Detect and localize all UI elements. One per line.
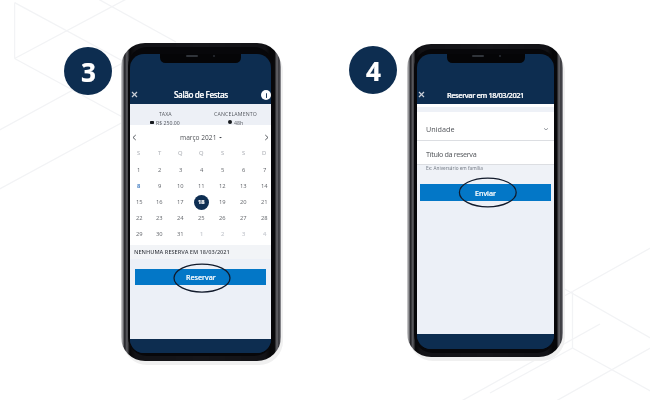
staticText: 16: [156, 198, 163, 206]
button[interactable]: 3: [170, 162, 191, 178]
staticText: D: [262, 149, 267, 157]
staticText: 15: [136, 198, 143, 206]
staticText: 19: [219, 198, 226, 206]
staticText: 9: [158, 182, 162, 190]
staticText: 28: [261, 214, 268, 222]
staticText: R$ 250.00: [156, 119, 180, 125]
button[interactable]: 2: [149, 162, 170, 178]
button[interactable]: Next month: [262, 133, 271, 142]
staticText: Unidade: [426, 124, 455, 134]
staticText: T: [158, 149, 162, 157]
button[interactable]: 14: [254, 178, 271, 194]
staticText: março 2021: [180, 133, 217, 142]
staticText: 25: [198, 214, 205, 222]
button[interactable]: 4: [191, 162, 212, 178]
staticText: 12: [219, 182, 226, 190]
staticText: 13: [240, 182, 247, 190]
button[interactable]: 6: [233, 162, 254, 178]
staticText: 5: [221, 166, 225, 174]
button[interactable]: março 2021: [139, 133, 262, 142]
button[interactable]: 18: [191, 194, 212, 210]
staticText: 21: [261, 198, 268, 206]
staticText: 31: [177, 230, 184, 238]
staticText: 3: [242, 230, 246, 238]
staticText: 3: [179, 166, 183, 174]
staticText: 23: [156, 214, 163, 222]
staticText: S: [221, 149, 225, 157]
button[interactable]: 16: [149, 194, 170, 210]
button[interactable]: Previous month: [130, 133, 139, 142]
button[interactable]: 24: [170, 210, 191, 226]
staticText: 1: [137, 166, 141, 174]
button[interactable]: 29: [130, 226, 149, 242]
button[interactable]: 9: [149, 178, 170, 194]
staticText: 2: [221, 230, 225, 238]
button[interactable]: 25: [191, 210, 212, 226]
button[interactable]: 28: [254, 210, 271, 226]
button[interactable]: 12: [212, 178, 233, 194]
button[interactable]: 8: [130, 178, 149, 194]
staticText: 4: [366, 53, 381, 88]
button[interactable]: Reservar: [135, 269, 266, 285]
button[interactable]: 31: [170, 226, 191, 242]
button[interactable]: 2: [212, 226, 233, 242]
button[interactable]: Close: [417, 85, 431, 104]
button[interactable]: 26: [212, 210, 233, 226]
staticText: Enviar: [475, 188, 496, 198]
button[interactable]: Título da reserva: [426, 143, 554, 164]
staticText: TAXA: [159, 110, 172, 117]
staticText: 22: [136, 214, 143, 222]
staticText: Reservar em 18/03/2021: [447, 90, 524, 100]
staticText: 1: [200, 230, 204, 238]
staticText: 17: [177, 198, 184, 206]
button[interactable]: 10: [170, 178, 191, 194]
staticText: 8: [137, 182, 141, 190]
button[interactable]: 22: [130, 210, 149, 226]
staticText: 7: [263, 166, 267, 174]
staticText: 27: [240, 214, 247, 222]
staticText: 24: [177, 214, 184, 222]
button[interactable]: 13: [233, 178, 254, 194]
button[interactable]: 21: [254, 194, 271, 210]
staticText: 4: [200, 166, 204, 174]
button[interactable]: Information: [257, 85, 271, 104]
staticText: S: [242, 149, 246, 157]
staticText: 11: [198, 182, 205, 190]
button[interactable]: 1: [191, 226, 212, 242]
button[interactable]: Unidade: [426, 117, 548, 140]
staticText: 30: [156, 230, 163, 238]
button[interactable]: 27: [233, 210, 254, 226]
staticText: NENHUMA RESERVA EM 18/03/2021: [134, 248, 230, 256]
staticText: 10: [177, 182, 184, 190]
button[interactable]: 11: [191, 178, 212, 194]
staticText: 6: [242, 166, 246, 174]
staticText: Ex: Aniversário em família: [426, 165, 483, 171]
button[interactable]: 5: [212, 162, 233, 178]
button[interactable]: 23: [149, 210, 170, 226]
button[interactable]: 19: [212, 194, 233, 210]
staticText: Q: [178, 149, 183, 157]
staticText: Salão de Festas: [174, 89, 228, 100]
staticText: Título da reserva: [426, 149, 477, 159]
staticText: Reservar: [186, 272, 216, 282]
button[interactable]: 1: [130, 162, 149, 178]
staticText: 20: [240, 198, 247, 206]
staticText: Q: [199, 149, 204, 157]
button[interactable]: 3: [64, 47, 112, 95]
staticText: S: [137, 149, 141, 157]
staticText: 29: [136, 230, 143, 238]
staticText: 18: [198, 198, 205, 206]
button[interactable]: 4: [254, 226, 271, 242]
button[interactable]: 4: [349, 46, 397, 94]
button[interactable]: Enviar: [420, 184, 551, 201]
button[interactable]: 20: [233, 194, 254, 210]
button[interactable]: 3: [233, 226, 254, 242]
button[interactable]: 30: [149, 226, 170, 242]
button[interactable]: Close: [130, 85, 144, 104]
staticText: 3: [81, 54, 96, 89]
button[interactable]: 17: [170, 194, 191, 210]
button[interactable]: 15: [130, 194, 149, 210]
button[interactable]: 7: [254, 162, 271, 178]
staticText: 4: [263, 230, 267, 238]
